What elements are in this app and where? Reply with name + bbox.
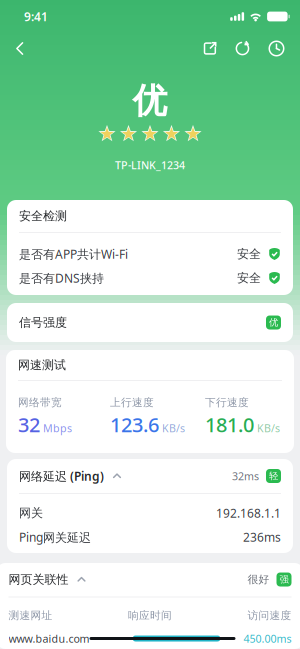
staticText: 轻 bbox=[269, 470, 278, 482]
staticText: KB/s bbox=[162, 421, 185, 435]
staticText: 32ms bbox=[232, 469, 259, 483]
staticText: 访问速度 bbox=[247, 609, 291, 622]
staticText: 下行速度 bbox=[205, 396, 249, 409]
staticText: 网络延迟 (Ping) bbox=[19, 468, 104, 484]
staticText: KB/s bbox=[257, 421, 280, 435]
staticText: 450.00ms bbox=[243, 631, 291, 646]
staticText: 181.0 bbox=[205, 411, 254, 438]
staticText: 32 bbox=[18, 411, 40, 438]
staticText: 网络带宽 bbox=[18, 396, 62, 409]
staticText: 是否有DNS挟持 bbox=[19, 270, 104, 286]
staticText: 信号强度 bbox=[19, 315, 67, 330]
staticText: 是否有APP共计Wi-Fi bbox=[19, 246, 128, 262]
staticText: 响应时间 bbox=[128, 609, 172, 622]
staticText: 123.6 bbox=[110, 411, 159, 438]
staticText: 236ms bbox=[243, 529, 281, 545]
staticText: Ping网关延迟 bbox=[19, 529, 91, 545]
staticText: 安全 bbox=[237, 247, 261, 261]
staticText: 网关 bbox=[19, 506, 43, 520]
staticText: 安全 bbox=[237, 271, 261, 285]
staticText: 上行速度 bbox=[110, 396, 154, 409]
staticText: 网速测试 bbox=[18, 358, 66, 372]
staticText: 安全检测 bbox=[19, 209, 67, 223]
staticText: 192.168.1.1 bbox=[216, 505, 281, 521]
staticText: 很好 bbox=[247, 573, 269, 586]
staticText: 优 bbox=[269, 317, 278, 328]
staticText: 网页关联性 bbox=[8, 572, 68, 587]
staticText: Mbps bbox=[43, 421, 72, 435]
staticText: TP-LINK_1234 bbox=[115, 158, 185, 172]
staticText: 9:41 bbox=[24, 8, 48, 24]
staticText: 测速网址 bbox=[8, 609, 52, 622]
staticText: 强 bbox=[279, 574, 288, 585]
staticText: www.baidu.com bbox=[8, 631, 89, 646]
staticText: 优 bbox=[132, 80, 167, 122]
